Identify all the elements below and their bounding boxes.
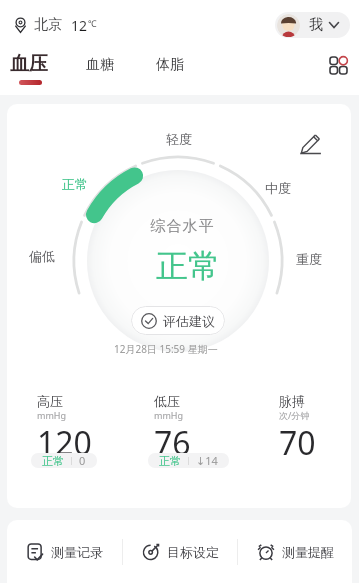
button[interactable]: 目标设定 (123, 520, 237, 583)
staticText: 次/分钟 (279, 409, 310, 421)
staticText: 偏低 (29, 248, 55, 264)
staticText: 评估建议 (163, 313, 215, 329)
staticText: 70 (279, 421, 316, 465)
button[interactable]: 我 (275, 12, 350, 38)
staticText: 测量记录 (51, 544, 103, 560)
button[interactable] (300, 133, 322, 155)
staticText: 120 (37, 421, 92, 465)
staticText: ↓14 (196, 453, 218, 468)
button[interactable]: 测量记录 (7, 520, 122, 583)
staticText: 综合水平 (150, 217, 214, 236)
staticText: 低压 (154, 393, 180, 409)
staticText: 高压 (37, 393, 63, 409)
staticText: 北京 (34, 16, 62, 34)
staticText: 轻度 (166, 131, 192, 147)
staticText: 测量提醒 (282, 544, 334, 560)
staticText: 76 (154, 421, 191, 465)
staticText: 正常 (156, 246, 220, 286)
staticText: 脉搏 (279, 393, 305, 409)
staticText: 正常 (62, 176, 88, 192)
staticText: ℃ (88, 17, 97, 29)
button[interactable]: 测量提醒 (238, 520, 352, 583)
staticText: 正常 (159, 454, 181, 468)
button[interactable]: 血糖 (86, 56, 114, 74)
staticText: 12月28日 15:59 星期一 (114, 342, 218, 356)
staticText: 我 (309, 16, 323, 34)
staticText: 目标设定 (167, 544, 219, 560)
staticText: 中度 (265, 180, 291, 196)
staticText: 正常 (42, 454, 64, 468)
staticText: 重度 (296, 251, 322, 267)
staticText: 12 (71, 16, 88, 35)
button[interactable]: 体脂 (156, 56, 184, 74)
staticText: mmHg (154, 409, 184, 421)
button[interactable] (330, 57, 347, 74)
button[interactable]: 血压 (10, 52, 48, 76)
staticText: mmHg (37, 409, 67, 421)
button[interactable]: 评估建议 (131, 306, 225, 335)
staticText: 0 (79, 453, 86, 468)
